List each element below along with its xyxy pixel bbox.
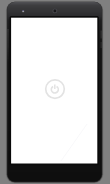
button[interactable]: Power <box>44 78 66 100</box>
